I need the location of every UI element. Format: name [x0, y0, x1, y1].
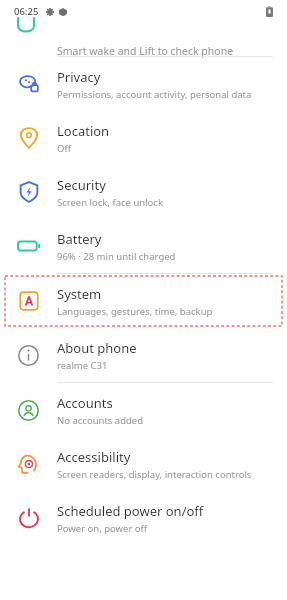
staticText: 06:25: [14, 5, 39, 18]
other: Scheduled power on/off: [19, 508, 39, 528]
button[interactable]: Accounts: [0, 383, 287, 437]
button[interactable]: Location: [0, 111, 287, 165]
other: Accounts: [18, 400, 39, 421]
staticText: Screen readers, display, interaction con…: [57, 468, 252, 481]
button[interactable]: Battery: [0, 219, 287, 273]
button[interactable]: System: [0, 274, 287, 328]
button[interactable]: Privacy: [0, 57, 287, 111]
other: Accessibility: [18, 454, 39, 475]
staticText: About phone: [57, 339, 137, 357]
button[interactable]: Smart wake and Lift to check phone: [0, 22, 287, 56]
staticText: System: [57, 285, 102, 303]
other: Privacy: [18, 73, 40, 95]
staticText: Power on, power off: [57, 522, 148, 535]
button[interactable]: Scheduled power on/off: [0, 491, 287, 545]
staticText: Privacy: [57, 68, 101, 86]
other: Battery: [17, 239, 41, 253]
other: Security: [18, 181, 40, 203]
staticText: Security: [57, 176, 106, 194]
staticText: Off: [57, 142, 71, 155]
staticText: Permissions, account activity, personal …: [57, 88, 252, 101]
button[interactable]: Security: [0, 165, 287, 219]
staticText: Accounts: [57, 394, 113, 412]
other: Location: [18, 127, 40, 149]
other: About phone: [18, 345, 39, 366]
staticText: No accounts added: [57, 414, 144, 427]
staticText: Location: [57, 122, 110, 140]
staticText: Scheduled power on/off: [57, 502, 204, 520]
staticText: Screen lock, face unlock: [57, 196, 163, 209]
button[interactable]: Accessibility: [0, 437, 287, 491]
staticText: Battery: [57, 230, 102, 248]
staticText: 96% · 28 min until charged: [57, 250, 176, 263]
other: System: [19, 291, 39, 311]
staticText: realme C31: [57, 359, 108, 372]
staticText: Languages, gestures, time, backup: [57, 305, 213, 318]
button[interactable]: About phone: [0, 328, 287, 382]
staticText: Accessibility: [57, 448, 131, 466]
staticText: Smart wake and Lift to check phone: [57, 44, 234, 58]
